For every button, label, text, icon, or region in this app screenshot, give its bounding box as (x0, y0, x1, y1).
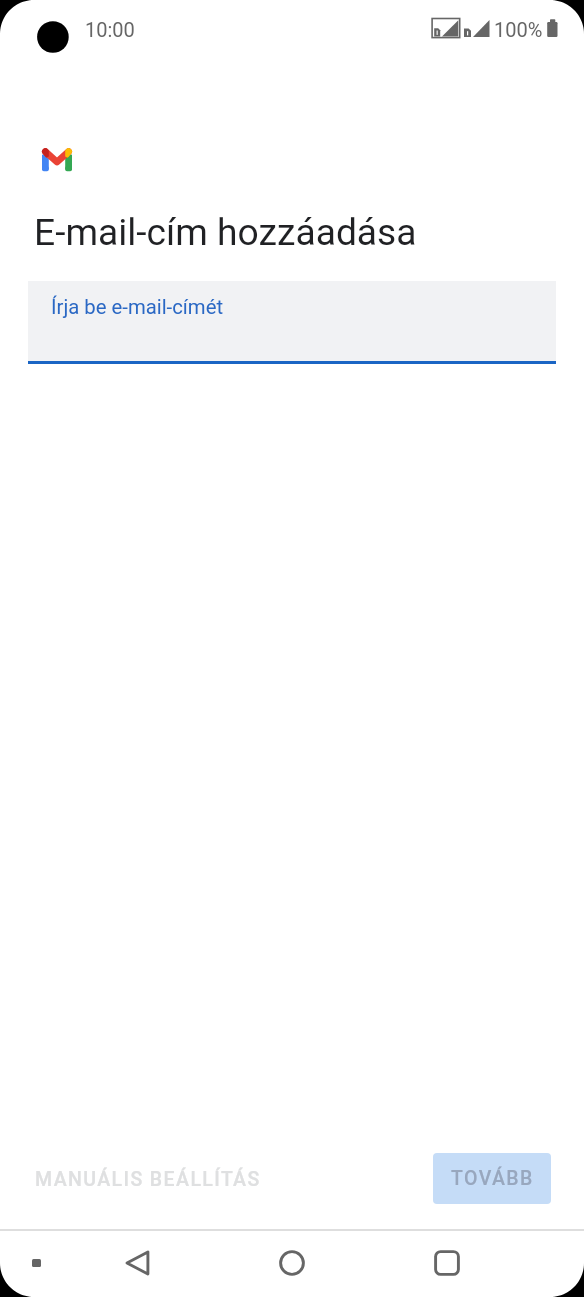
staticText: MANUÁLIS BEÁLLÍTÁS (35, 1168, 261, 1191)
staticText: E-mail-cím hozzáadása (34, 210, 417, 254)
staticText: 100% (494, 18, 543, 41)
button[interactable]: Back (110, 1238, 164, 1288)
staticText: Írja be e-mail-címét (51, 295, 224, 319)
button[interactable]: TOVÁBB (433, 1153, 551, 1204)
staticText: TOVÁBB (451, 1167, 534, 1190)
button[interactable]: Írja be e-mail-címét (28, 281, 556, 364)
button[interactable]: Recent apps (420, 1238, 474, 1288)
button[interactable]: MANUÁLIS BEÁLLÍTÁS (19, 1154, 277, 1205)
staticText: 10:00 (85, 18, 135, 41)
button[interactable]: Home (265, 1238, 319, 1288)
